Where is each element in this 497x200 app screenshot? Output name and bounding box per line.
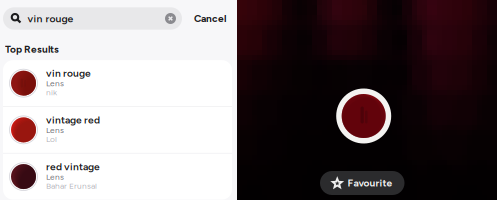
- staticText: Lol: [46, 134, 57, 144]
- button[interactable]: red vintage: [3, 154, 232, 200]
- button[interactable]: Lens preview: [336, 88, 391, 143]
- button[interactable]: Cancel: [182, 7, 238, 30]
- staticText: Bahar Erunsal: [46, 181, 97, 191]
- staticText: Top Results: [5, 43, 59, 55]
- button[interactable]: Favourite: [320, 171, 404, 195]
- button[interactable]: vintage red: [3, 107, 232, 153]
- staticText: nik: [46, 87, 57, 97]
- staticText: vin rouge: [27, 12, 73, 25]
- button[interactable]: vin rouge: [3, 60, 232, 106]
- staticText: Lens: [46, 172, 64, 182]
- staticText: vintage red: [46, 114, 100, 126]
- staticText: red vintage: [46, 160, 100, 173]
- staticText: vin rouge: [46, 67, 91, 79]
- staticText: Lens: [46, 78, 64, 88]
- staticText: Lens: [46, 125, 64, 135]
- staticText: Favourite: [347, 177, 392, 189]
- staticText: Cancel: [194, 12, 226, 25]
